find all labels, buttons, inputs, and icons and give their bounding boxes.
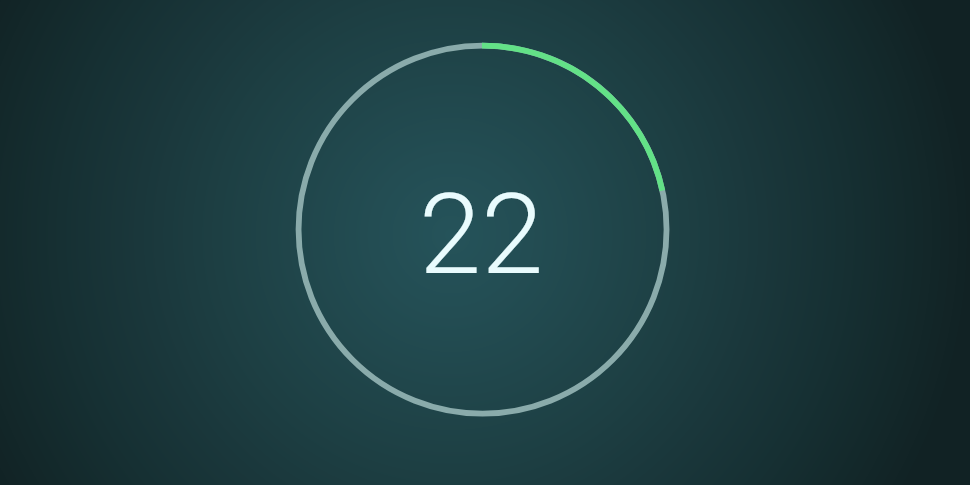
staticText: 22 <box>419 169 544 300</box>
button[interactable]: Progress 22 percent <box>0 0 970 485</box>
